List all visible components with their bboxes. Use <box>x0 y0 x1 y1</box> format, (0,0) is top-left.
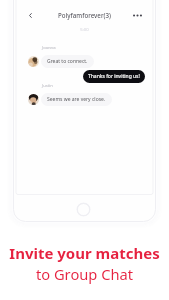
button[interactable]: Back <box>22 7 39 24</box>
staticText: Polyfamforever(3) <box>13 11 156 19</box>
staticText: Joanna <box>42 45 56 51</box>
staticText: Great to connect. <box>47 58 88 65</box>
button[interactable]: Great to connect. <box>41 55 94 68</box>
staticText: Seems we are very close. <box>47 96 106 103</box>
staticText: 5:00 <box>13 27 156 33</box>
staticText: Thanks for inviting us! <box>88 73 140 80</box>
staticText: Justin <box>42 83 53 89</box>
staticText: Invite your matches <box>0 243 169 263</box>
button[interactable]: More options <box>129 7 146 24</box>
button[interactable]: Thanks for inviting us! <box>83 70 145 83</box>
staticText: to Group Chat <box>0 264 169 284</box>
button[interactable]: Seems we are very close. <box>41 93 112 106</box>
button[interactable]: Home <box>76 202 91 217</box>
